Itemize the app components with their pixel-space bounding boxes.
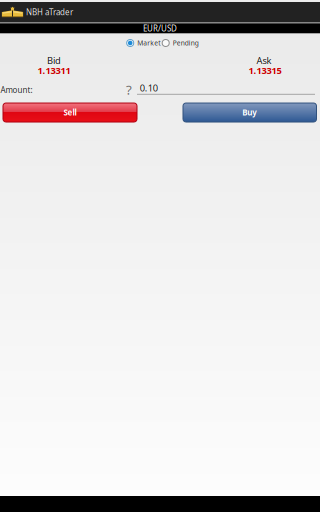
staticText: Amount: [0,84,32,95]
staticText: Market [137,39,160,47]
staticText: 1.13311 [37,64,70,77]
staticText: Ask [256,54,271,67]
button[interactable]: Sell [3,103,137,122]
button[interactable]: Market [127,37,160,49]
button[interactable]: Buy [183,103,316,122]
staticText: EUR/USD [143,23,177,34]
staticText: 0.10 [140,82,158,94]
button[interactable]: 0.10 [137,82,315,98]
staticText: Bid [47,54,61,67]
staticText: 1.13315 [248,64,281,77]
staticText: Buy [242,107,257,118]
button[interactable]: Pending [162,37,199,49]
staticText: Sell [63,107,76,118]
staticText: NBH aTrader [26,7,73,17]
button[interactable]: Amount help [122,83,135,96]
button[interactable]: EUR/USD [0,23,320,33]
staticText: ? [126,81,132,98]
staticText: Pending [173,39,199,47]
